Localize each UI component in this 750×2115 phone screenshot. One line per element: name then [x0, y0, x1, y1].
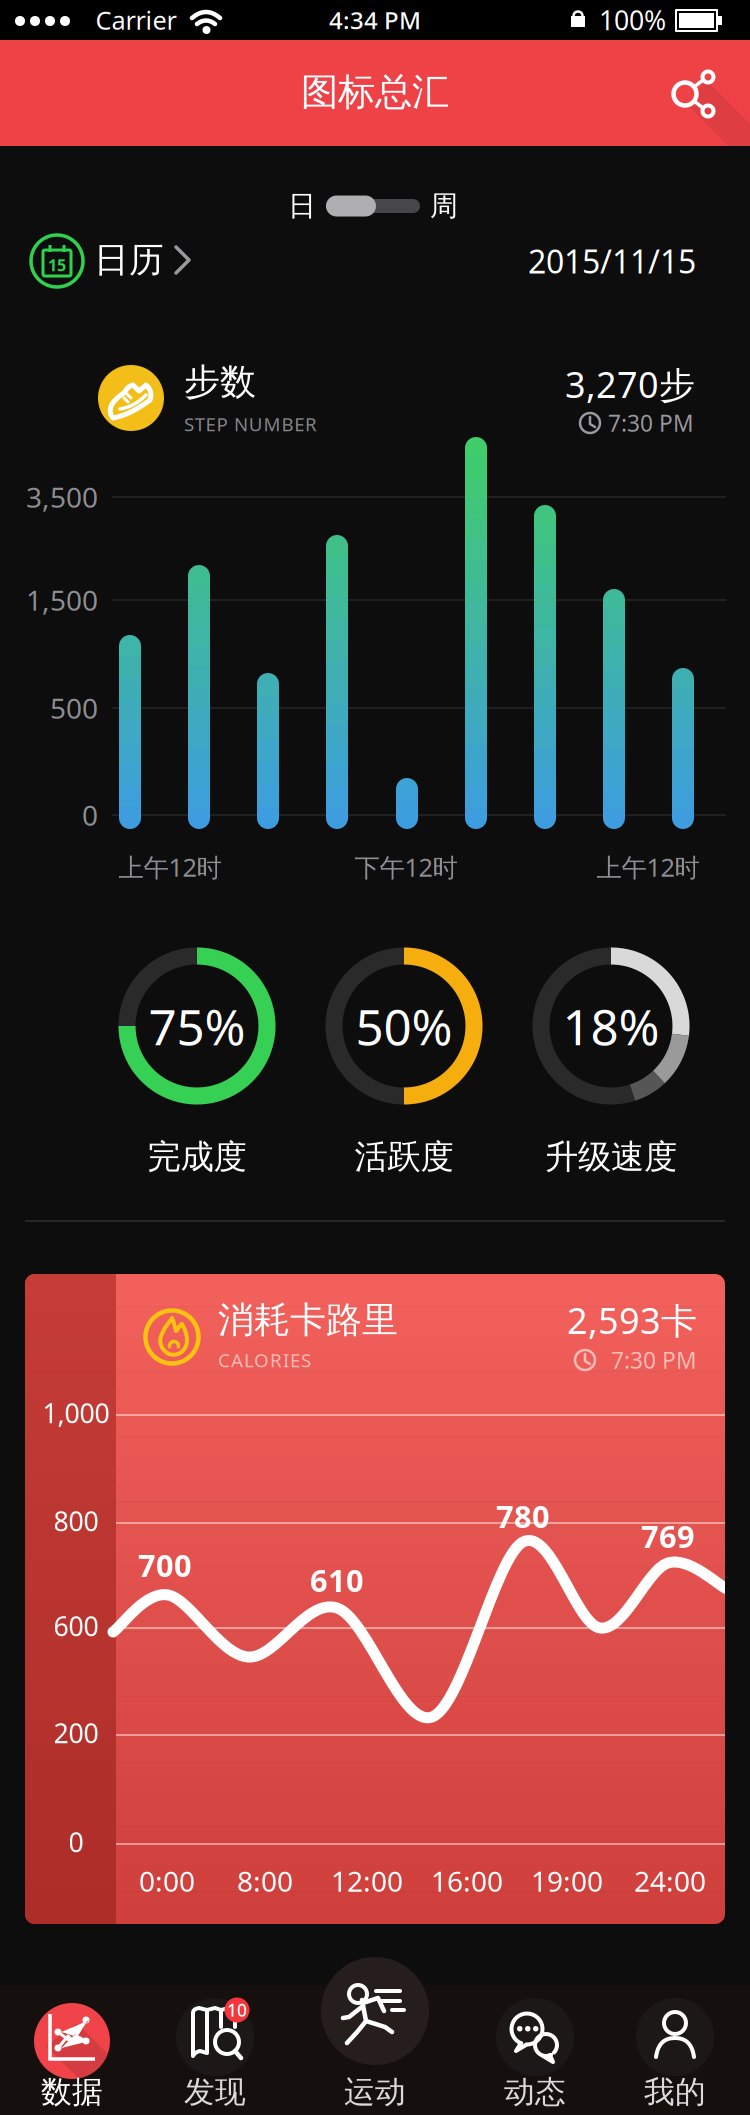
- staticText: 我的: [644, 2073, 706, 2111]
- staticText: 200: [53, 1715, 98, 1751]
- button[interactable]: 动态: [475, 1985, 595, 2111]
- staticText: 日: [288, 189, 316, 223]
- staticText: 700: [138, 1545, 192, 1585]
- staticText: 下午12时: [354, 850, 457, 884]
- staticText: 2015/11/15: [528, 240, 696, 282]
- staticText: 周: [430, 189, 458, 223]
- staticText: 12:00: [331, 1862, 403, 1900]
- staticText: 0: [68, 1824, 83, 1860]
- staticText: 1,000: [42, 1395, 109, 1431]
- staticText: 3,270步: [565, 360, 695, 408]
- staticText: 24:00: [634, 1862, 706, 1900]
- staticText: 0: [82, 796, 98, 834]
- staticText: 50%: [355, 993, 452, 1059]
- staticText: 18%: [562, 993, 659, 1059]
- button[interactable]: 15: [23, 227, 213, 295]
- staticText: 运动: [344, 2073, 406, 2111]
- staticText: 活跃度: [354, 1136, 453, 1177]
- staticText: 800: [53, 1503, 98, 1539]
- staticText: 升级速度: [545, 1136, 677, 1177]
- button[interactable]: 运动: [315, 1985, 435, 2111]
- button[interactable]: 数据: [12, 1985, 132, 2111]
- staticText: 500: [50, 689, 98, 727]
- staticText: 1,500: [26, 581, 98, 619]
- staticText: 发现: [184, 2073, 246, 2111]
- staticText: 动态: [504, 2073, 566, 2111]
- staticText: 日历: [94, 239, 164, 281]
- staticText: 15: [48, 254, 66, 276]
- staticText: 上午12时: [596, 850, 699, 884]
- staticText: STEP NUMBER: [184, 412, 317, 436]
- button[interactable]: 我的: [615, 1985, 735, 2111]
- staticText: 769: [641, 1516, 695, 1556]
- staticText: 780: [496, 1496, 550, 1536]
- staticText: 7:30 PM: [611, 1345, 697, 1375]
- staticText: 100%: [599, 2, 666, 38]
- staticText: 75%: [148, 993, 245, 1059]
- staticText: 数据: [41, 2073, 103, 2111]
- staticText: 消耗卡路里: [218, 1298, 398, 1342]
- staticText: 完成度: [147, 1136, 246, 1177]
- button[interactable]: 10: [155, 1985, 275, 2111]
- staticText: 600: [53, 1608, 98, 1644]
- staticText: 16:00: [431, 1862, 503, 1900]
- staticText: 0:00: [139, 1862, 195, 1900]
- staticText: 3,500: [26, 478, 98, 516]
- button[interactable]: Share: [655, 62, 719, 126]
- staticText: 2,593卡: [567, 1296, 697, 1344]
- staticText: 7:30 PM: [608, 408, 694, 438]
- staticText: 19:00: [531, 1862, 603, 1900]
- staticText: 图标总汇: [301, 69, 449, 115]
- staticText: 610: [310, 1560, 364, 1600]
- staticText: 4:34 PM: [329, 4, 421, 36]
- staticText: CALORIES: [218, 1348, 311, 1372]
- staticText: 10: [227, 1998, 247, 2021]
- button[interactable]: Day / week switch: [325, 191, 421, 221]
- staticText: 步数: [184, 360, 256, 404]
- staticText: Carrier: [95, 3, 176, 37]
- staticText: 上午12时: [118, 850, 221, 884]
- staticText: 8:00: [237, 1862, 293, 1900]
